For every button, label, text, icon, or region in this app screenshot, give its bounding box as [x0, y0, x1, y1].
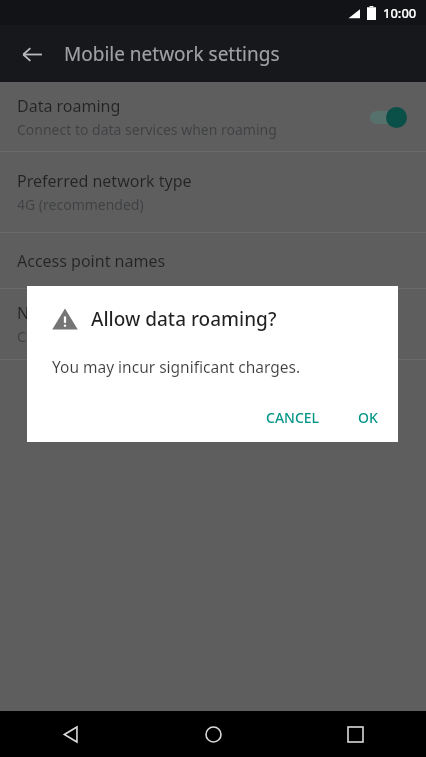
staticText: 4G (recommended) [17, 195, 144, 214]
staticText: Allow data roaming? [91, 306, 277, 332]
button[interactable]: OK [346, 399, 390, 436]
button[interactable]: Home [189, 711, 237, 757]
button[interactable]: Back [47, 711, 95, 757]
staticText: Network operators [17, 302, 160, 324]
staticText: Connect to data services when roaming [17, 120, 277, 139]
staticText: OK [358, 408, 378, 427]
button[interactable]: Access point names [0, 233, 426, 288]
staticText: Preferred network type [17, 170, 192, 192]
staticText: 10:00 [383, 4, 417, 22]
staticText: Access point names [17, 250, 166, 272]
staticText: CANCEL [266, 408, 320, 427]
button[interactable]: Back [12, 34, 52, 74]
button[interactable]: Preferred network type [0, 152, 426, 232]
button[interactable]: Recent apps [331, 711, 379, 757]
staticText: Choose a network operator [17, 327, 197, 346]
button[interactable]: Data roaming [0, 82, 426, 151]
staticText: Mobile network settings [64, 41, 280, 67]
button[interactable]: Data roaming toggle [364, 104, 412, 130]
staticText: You may incur significant charges. [52, 356, 301, 377]
button[interactable]: Network operators [0, 289, 426, 359]
staticText: Data roaming [17, 95, 121, 117]
button[interactable]: CANCEL [254, 399, 332, 436]
